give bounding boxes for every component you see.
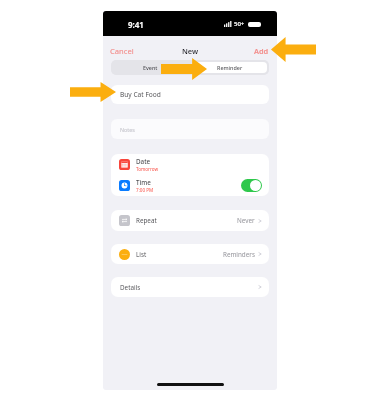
button[interactable]: Buy Cat Food	[111, 85, 269, 104]
staticText: List	[136, 250, 147, 259]
staticText: Repeat	[136, 216, 157, 225]
button[interactable]: List	[111, 244, 269, 264]
button[interactable]: Reminder	[192, 62, 267, 73]
staticText: Tomorrow	[136, 166, 159, 172]
staticText: Never	[237, 216, 255, 225]
staticText: Reminder	[217, 64, 243, 71]
button[interactable]: Time toggle	[241, 179, 262, 192]
button[interactable]: Cancel	[110, 46, 134, 56]
staticText: 9:41	[128, 19, 144, 30]
staticText: Date	[136, 157, 151, 166]
button[interactable]: Repeat	[111, 210, 269, 231]
staticText: 50+	[234, 20, 245, 28]
staticText: 7:00 PM	[136, 187, 154, 193]
button[interactable]: Event	[111, 60, 190, 75]
button[interactable]: Notes	[111, 119, 269, 139]
button[interactable]: Time	[111, 175, 269, 196]
button[interactable]: Details	[111, 277, 269, 297]
button[interactable]: Add	[254, 46, 269, 56]
staticText: Buy Cat Food	[120, 90, 161, 99]
staticText: Reminders	[223, 250, 255, 259]
staticText: Time	[136, 178, 151, 187]
staticText: Event	[143, 64, 158, 71]
staticText: New	[182, 46, 199, 56]
staticText: Details	[120, 283, 141, 292]
staticText: Notes	[120, 126, 135, 133]
button[interactable]: Date	[111, 154, 269, 175]
